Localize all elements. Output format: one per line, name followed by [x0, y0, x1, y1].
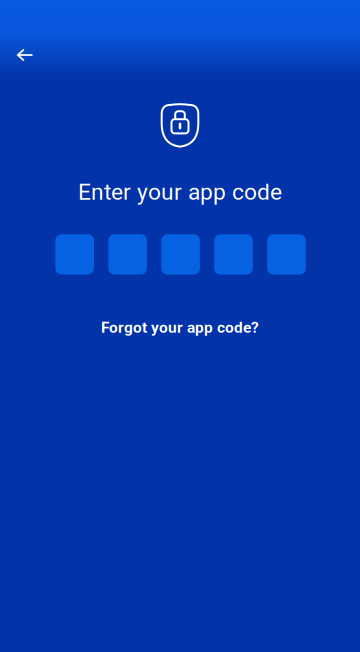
button[interactable]: App code digit 4 — [214, 234, 253, 274]
staticText: Enter your app code — [78, 179, 282, 205]
staticText: Forgot your app code? — [101, 318, 259, 337]
button[interactable]: App code digit 2 — [108, 234, 147, 274]
button[interactable]: App code digit 5 — [267, 234, 306, 274]
button[interactable]: App code digit 3 — [161, 234, 200, 274]
button[interactable]: Back — [5, 35, 45, 75]
button[interactable]: App code digit 1 — [55, 234, 94, 274]
button[interactable]: Forgot your app code? — [101, 318, 259, 337]
